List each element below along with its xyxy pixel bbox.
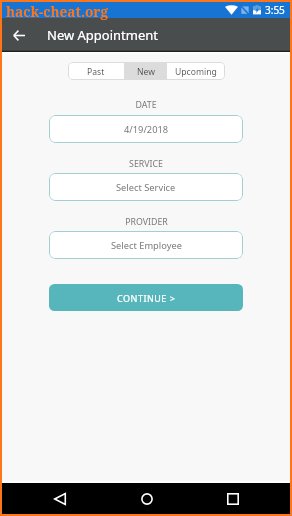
staticText: PROVIDER bbox=[125, 216, 168, 228]
button[interactable]: Home bbox=[131, 483, 162, 514]
button[interactable]: Back bbox=[44, 483, 75, 514]
button[interactable]: CONTINUE > bbox=[49, 284, 243, 311]
button[interactable]: Past bbox=[68, 62, 124, 80]
staticText: hack-cheat.org bbox=[6, 2, 108, 21]
staticText: New bbox=[137, 66, 155, 78]
button[interactable]: Back bbox=[2, 18, 36, 52]
staticText: Past bbox=[87, 66, 105, 78]
button[interactable]: New bbox=[124, 62, 167, 80]
button[interactable]: Select Employee bbox=[49, 231, 243, 259]
staticText: DATE bbox=[135, 99, 157, 111]
staticText: SERVICE bbox=[129, 158, 163, 170]
button[interactable]: Upcoming bbox=[167, 62, 225, 80]
staticText: New Appointment bbox=[47, 26, 159, 44]
staticText: Select Service bbox=[116, 181, 176, 194]
staticText: Upcoming bbox=[175, 66, 217, 78]
staticText: 3:55 bbox=[265, 3, 285, 17]
button[interactable]: Recents bbox=[217, 483, 248, 514]
button[interactable]: 4/19/2018 bbox=[49, 115, 243, 143]
staticText: CONTINUE > bbox=[117, 292, 176, 304]
staticText: 4/19/2018 bbox=[124, 123, 169, 136]
staticText: Select Employee bbox=[111, 239, 182, 252]
button[interactable]: Select Service bbox=[49, 173, 243, 201]
